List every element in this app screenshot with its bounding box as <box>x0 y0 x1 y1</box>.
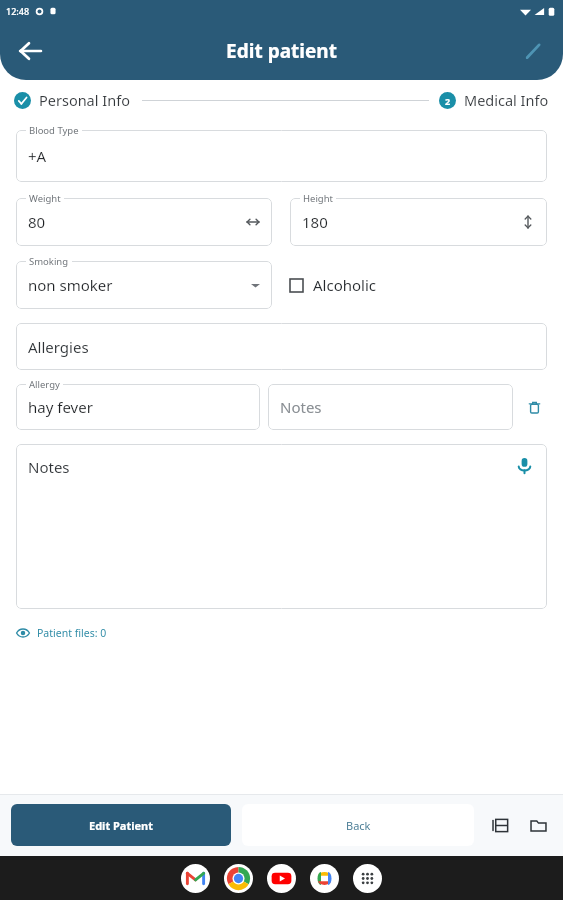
staticText: Allergy <box>29 378 60 391</box>
staticText: Personal Info <box>39 90 130 110</box>
button[interactable]: Voice input <box>511 452 537 478</box>
staticText: 2 <box>445 95 451 107</box>
staticText: Weight <box>29 192 61 205</box>
staticText: Blood Type <box>29 124 79 137</box>
button[interactable]: Chrome <box>224 864 253 893</box>
button[interactable] <box>16 261 272 309</box>
staticText: Back <box>346 818 371 833</box>
button[interactable]: Back <box>242 804 474 846</box>
button[interactable]: Gmail <box>181 864 210 893</box>
staticText: Alcoholic <box>313 275 377 295</box>
staticText: 180 <box>302 212 521 232</box>
staticText: 12:48 <box>6 5 30 17</box>
staticText: Notes <box>28 457 70 477</box>
staticText: Smoking <box>29 255 69 268</box>
staticText: +A <box>28 146 535 166</box>
button[interactable]: Notes <box>16 444 547 609</box>
staticText: Notes <box>280 397 501 417</box>
button[interactable]: Split screen <box>486 811 514 839</box>
staticText: Patient files: 0 <box>37 626 107 640</box>
staticText: Edit Patient <box>89 818 154 833</box>
staticText: Edit patient <box>226 38 337 64</box>
button[interactable] <box>16 198 272 246</box>
staticText: Medical Info <box>464 90 549 110</box>
button[interactable]: Edit <box>513 31 553 71</box>
button[interactable] <box>16 384 260 430</box>
button[interactable]: 2 <box>439 90 549 110</box>
button[interactable] <box>290 198 547 246</box>
button[interactable]: YouTube <box>267 864 296 893</box>
button[interactable]: Personal Info <box>14 90 132 110</box>
button[interactable]: Delete allergy <box>521 394 547 420</box>
button[interactable]: Alcoholic <box>290 275 547 295</box>
button[interactable] <box>16 130 547 182</box>
staticText: 80 <box>28 212 246 232</box>
staticText: Allergies <box>28 337 535 357</box>
button[interactable]: Files <box>524 811 552 839</box>
button[interactable] <box>268 384 513 430</box>
button[interactable]: Google Photos <box>310 864 339 893</box>
button[interactable]: Patient files: 0 <box>16 624 107 642</box>
staticText: Height <box>303 192 333 205</box>
button[interactable]: Edit Patient <box>11 804 231 846</box>
button[interactable] <box>16 323 547 370</box>
button[interactable]: All apps <box>353 864 382 893</box>
staticText: non smoker <box>28 275 251 295</box>
button[interactable]: Back <box>8 29 52 73</box>
staticText: hay fever <box>28 397 248 417</box>
